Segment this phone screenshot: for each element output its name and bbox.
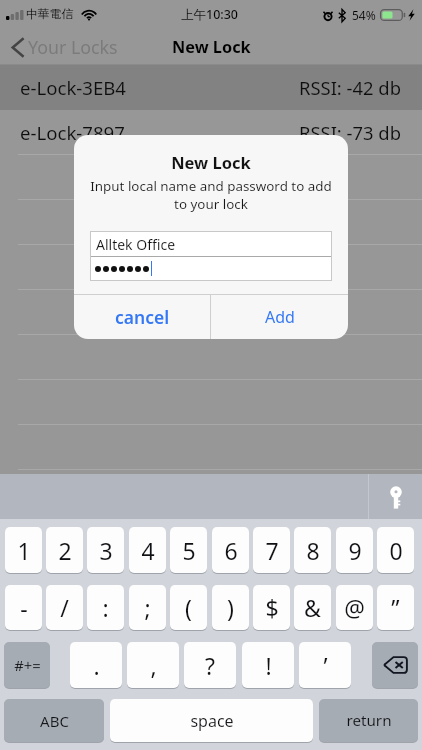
staticText: ? bbox=[205, 650, 215, 681]
staticText: ) bbox=[227, 592, 234, 623]
button[interactable]: , bbox=[127, 642, 179, 688]
button[interactable]: e-Lock-7897 bbox=[0, 110, 422, 155]
staticText: 中華電信 bbox=[26, 7, 74, 22]
button[interactable]: : bbox=[87, 585, 124, 630]
button[interactable]: space bbox=[110, 699, 313, 742]
button[interactable]: cancel bbox=[74, 295, 210, 339]
button[interactable]: Your Locks bbox=[0, 31, 128, 63]
staticText: ( bbox=[185, 592, 192, 623]
staticText: Add bbox=[265, 306, 295, 328]
other: Delete bbox=[372, 642, 418, 688]
button[interactable]: 8 bbox=[294, 527, 331, 573]
staticText: 5 bbox=[182, 535, 196, 566]
button[interactable]: return bbox=[319, 699, 418, 742]
staticText: 54% bbox=[352, 7, 376, 23]
button[interactable] bbox=[372, 642, 418, 688]
button[interactable]: & bbox=[294, 585, 331, 630]
button[interactable]: e-Lock-3EB4 bbox=[0, 65, 422, 110]
staticText: e-Lock-7897 bbox=[20, 120, 125, 145]
button[interactable]: #+= bbox=[4, 642, 50, 688]
button[interactable]: ABC bbox=[4, 699, 104, 742]
button[interactable]: 2 bbox=[46, 527, 83, 573]
staticText: ” bbox=[391, 592, 400, 623]
staticText: return bbox=[346, 710, 392, 731]
staticText: - bbox=[20, 592, 28, 623]
button[interactable]: ! bbox=[242, 642, 294, 688]
staticText: ABC bbox=[40, 711, 69, 731]
staticText: 9 bbox=[348, 535, 362, 566]
staticText: 上午10:30 bbox=[181, 6, 239, 23]
staticText: RSSI: -73 db bbox=[299, 120, 401, 145]
staticText: . bbox=[93, 650, 100, 681]
button[interactable]: ’ bbox=[299, 642, 351, 688]
button[interactable]: $ bbox=[253, 585, 290, 630]
staticText: New Lock bbox=[172, 36, 251, 58]
staticText: RSSI: -42 db bbox=[299, 75, 401, 100]
staticText: ! bbox=[265, 650, 272, 681]
button[interactable]: ) bbox=[212, 585, 249, 630]
staticText: 1 bbox=[17, 535, 31, 566]
button[interactable]: ” bbox=[377, 585, 414, 630]
staticText: space bbox=[190, 710, 234, 732]
staticText: Input local name and password to add to … bbox=[89, 177, 333, 213]
staticText: , bbox=[150, 650, 157, 681]
staticText: / bbox=[60, 592, 69, 623]
button[interactable]: 5 bbox=[170, 527, 207, 573]
staticText: & bbox=[304, 592, 321, 623]
staticText: ; bbox=[144, 592, 151, 623]
button[interactable]: 1 bbox=[5, 527, 42, 573]
button[interactable]: / bbox=[46, 585, 83, 630]
button[interactable]: 6 bbox=[212, 527, 249, 573]
staticText: 3 bbox=[99, 535, 113, 566]
staticText: $ bbox=[265, 592, 279, 623]
staticText: Your Locks bbox=[28, 35, 118, 59]
staticText: 7 bbox=[265, 535, 279, 566]
staticText: ’ bbox=[323, 650, 328, 681]
staticText: cancel bbox=[115, 305, 170, 329]
staticText: New Lock bbox=[74, 151, 348, 173]
button[interactable]: 3 bbox=[87, 527, 124, 573]
staticText: #+= bbox=[14, 655, 41, 675]
staticText: : bbox=[102, 592, 109, 623]
staticText: 0 bbox=[389, 535, 403, 566]
staticText: 8 bbox=[306, 535, 320, 566]
staticText: 2 bbox=[58, 535, 72, 566]
button[interactable]: 7 bbox=[253, 527, 290, 573]
button[interactable]: @ bbox=[336, 585, 373, 630]
staticText: Alltek Office bbox=[96, 235, 176, 254]
button[interactable]: ; bbox=[129, 585, 166, 630]
staticText: 6 bbox=[224, 535, 238, 566]
button[interactable]: ( bbox=[170, 585, 207, 630]
staticText: e-Lock-3EB4 bbox=[20, 75, 127, 100]
button[interactable]: . bbox=[70, 642, 122, 688]
button[interactable]: - bbox=[5, 585, 42, 630]
button[interactable]: 9 bbox=[336, 527, 373, 573]
button[interactable]: Add bbox=[211, 295, 348, 339]
button[interactable]: 4 bbox=[129, 527, 166, 573]
button[interactable]: 0 bbox=[377, 527, 414, 573]
staticText: @ bbox=[344, 592, 365, 623]
button[interactable]: Passwords bbox=[369, 474, 422, 519]
button[interactable]: ? bbox=[184, 642, 236, 688]
staticText: 4 bbox=[141, 535, 155, 566]
